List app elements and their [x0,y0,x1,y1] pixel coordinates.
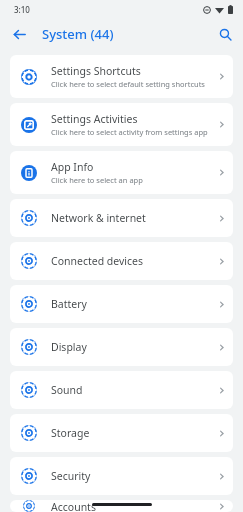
staticText: System (44) [42,25,114,43]
staticText: Connected devices [51,254,144,268]
staticText: Storage [51,426,90,440]
button[interactable]: Connected devices [10,242,233,280]
staticText: Click here to select an app [51,175,143,185]
button[interactable]: Battery [10,285,233,323]
button[interactable]: Accounts [10,500,233,512]
button[interactable]: Display [10,328,233,366]
staticText: Display [51,340,87,354]
staticText: Click here to select activity from setti… [51,127,208,137]
button[interactable]: Search [212,21,238,47]
button[interactable]: Settings Shortcuts [10,55,233,98]
staticText: App Info [51,160,94,174]
staticText: Accounts [51,500,96,512]
staticText: Network & internet [51,211,146,225]
staticText: Settings Activities [51,112,138,126]
button[interactable]: Network & internet [10,199,233,237]
button[interactable]: Security [10,457,233,495]
staticText: Settings Shortcuts [51,64,141,78]
staticText: 3:10 [14,4,30,15]
staticText: Sound [51,383,83,397]
button[interactable]: App Info [10,151,233,194]
button[interactable]: Settings Activities [10,103,233,146]
staticText: Click here to select default setting sho… [51,79,205,89]
button[interactable]: Back [6,21,32,47]
staticText: Security [51,469,91,483]
button[interactable]: Storage [10,414,233,452]
staticText: Battery [51,297,87,311]
button[interactable]: Sound [10,371,233,409]
